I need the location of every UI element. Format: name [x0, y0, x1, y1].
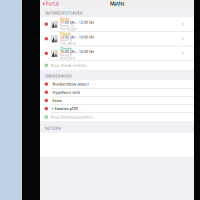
button[interactable]: Chemie: [40, 46, 194, 60]
staticText: 13:00 Uhr – 14:00 Uhr: [60, 35, 94, 39]
staticText: Exercise p129: [55, 106, 78, 111]
button[interactable]: Neue Stunde erstellen…: [40, 61, 194, 70]
staticText: 11:00 Uhr – 12:00 Uhr: [60, 20, 94, 25]
staticText: UNTERRICHTSSTUNDEN: [45, 11, 83, 15]
staticText: Hypothesis tests: [52, 90, 80, 95]
staticText: Raum 12: [60, 24, 74, 28]
button[interactable]: Hypothesis tests: [40, 88, 194, 96]
staticText: Herr Ebert: [60, 56, 75, 60]
button[interactable]: Number theory project: [40, 80, 194, 88]
staticText: NOTIZEN: [45, 126, 61, 131]
staticText: Mathe: [60, 17, 70, 21]
staticText: Physik: [60, 32, 71, 36]
button[interactable]: Mathe: [40, 17, 194, 31]
staticText: Number theory project: [52, 82, 88, 86]
staticText: ERINNERUNGEN: [45, 74, 72, 78]
staticText: Neue Stunde erstellen…: [50, 63, 89, 68]
button[interactable]: Physik: [40, 32, 194, 46]
staticText: Neue Erinnerung erstellen…: [50, 115, 95, 119]
button[interactable]: Neue Erinnerung erstellen…: [40, 113, 194, 121]
staticText: Herr Krüger: [60, 27, 77, 31]
staticText: Frau Weiß: [60, 42, 76, 46]
staticText: Chemie: [60, 46, 72, 51]
staticText: Maths: [110, 0, 124, 7]
staticText: Exam: [52, 98, 61, 103]
staticText: Raum 4: [60, 38, 72, 42]
button[interactable]: Portal: [40, 0, 58, 8]
staticText: 15:00 Uhr – 16:00 Uhr: [60, 50, 94, 54]
button[interactable]: Exam: [40, 97, 194, 104]
button[interactable]: Exercise p129: [40, 105, 194, 113]
staticText: Portal: [45, 1, 58, 7]
staticText: Raum 8: [60, 53, 72, 57]
